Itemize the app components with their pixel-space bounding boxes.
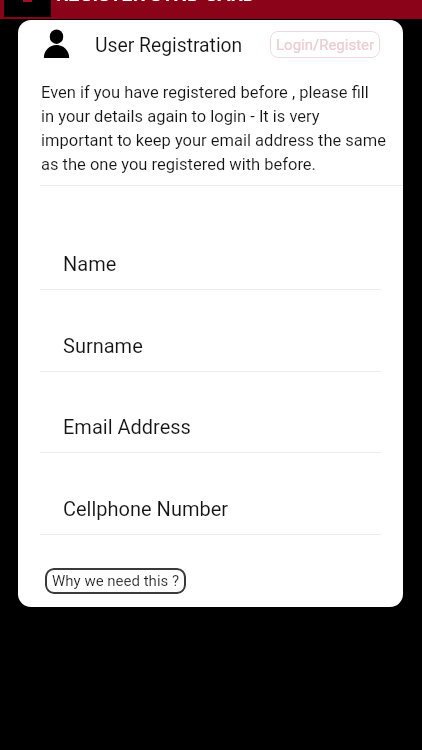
staticText: Name xyxy=(63,252,117,275)
staticText: Email Address xyxy=(63,415,191,438)
staticText: Cellphone Number xyxy=(63,497,229,520)
staticText: REGISTER SYND CARD xyxy=(56,0,256,6)
staticText: Even if you have registered before , ple… xyxy=(41,83,403,174)
button[interactable]: User Registration xyxy=(43,22,243,64)
button[interactable]: App logo xyxy=(4,0,51,17)
staticText: Why we need this ? xyxy=(52,572,180,590)
button[interactable]: Surname xyxy=(40,327,381,372)
button[interactable]: Name xyxy=(40,245,381,290)
button[interactable]: Email Address xyxy=(40,408,381,453)
staticText: Login/Register xyxy=(276,36,375,54)
button[interactable]: Why we need this ? xyxy=(45,568,186,594)
staticText: Surname xyxy=(63,334,143,357)
button[interactable]: Login/Register xyxy=(270,31,380,58)
staticText: User Registration xyxy=(95,34,243,57)
button[interactable]: Cellphone Number xyxy=(40,490,381,535)
